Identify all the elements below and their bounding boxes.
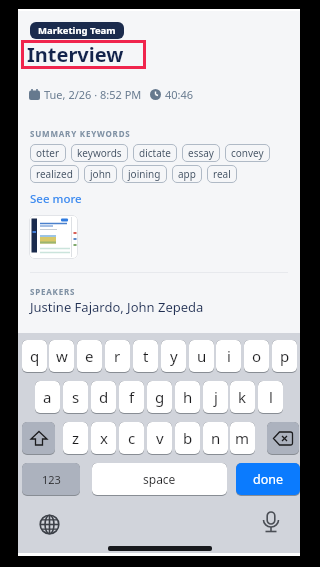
staticText: See more — [30, 191, 82, 207]
staticText: john — [90, 167, 111, 181]
staticText: c — [128, 428, 136, 448]
staticText: realized — [36, 167, 73, 181]
staticText: real — [213, 167, 231, 181]
button[interactable]: a — [35, 381, 60, 414]
staticText: b — [183, 428, 193, 448]
button[interactable]: b — [175, 422, 200, 455]
button[interactable] — [22, 422, 55, 455]
button[interactable]: t — [133, 340, 158, 373]
staticText: e — [85, 346, 94, 366]
button[interactable]: u — [189, 340, 214, 373]
staticText: o — [252, 346, 262, 366]
staticText: a — [43, 387, 52, 407]
button[interactable]: space — [92, 463, 227, 496]
button[interactable]: x — [91, 422, 116, 455]
button[interactable]: otter — [36, 146, 60, 160]
button[interactable]: m — [230, 422, 255, 455]
button[interactable] — [267, 422, 299, 455]
button[interactable]: essay — [188, 146, 214, 160]
staticText: Interview — [27, 41, 124, 68]
staticText: essay — [188, 146, 214, 160]
staticText: keywords — [77, 146, 122, 160]
staticText: space — [143, 471, 176, 487]
button[interactable]: dictate — [139, 146, 171, 160]
staticText: Marketing Team — [38, 24, 116, 37]
staticText: w — [56, 346, 68, 366]
staticText: k — [238, 387, 247, 407]
staticText: u — [197, 346, 207, 366]
staticText: 123 — [42, 472, 61, 487]
button[interactable]: s — [63, 381, 88, 414]
staticText: l — [269, 387, 273, 407]
button[interactable]: d — [91, 381, 116, 414]
button[interactable]: v — [147, 422, 172, 455]
staticText: otter — [36, 146, 60, 160]
button[interactable]: z — [63, 422, 88, 455]
button[interactable]: done — [236, 463, 300, 496]
staticText: done — [253, 471, 284, 488]
staticText: n — [211, 428, 221, 448]
button[interactable]: l — [258, 381, 283, 414]
button[interactable]: realized — [36, 167, 73, 181]
staticText: q — [30, 346, 40, 366]
staticText: SUMMARY KEYWORDS — [30, 128, 131, 139]
button[interactable] — [39, 514, 60, 535]
button[interactable] — [29, 215, 78, 259]
staticText: i — [227, 346, 231, 366]
button[interactable]: See more — [30, 191, 82, 207]
staticText: g — [155, 387, 165, 407]
staticText: joining — [128, 167, 161, 181]
button[interactable]: r — [105, 340, 130, 373]
staticText: s — [72, 387, 80, 407]
staticText: h — [183, 387, 193, 407]
button[interactable]: f — [119, 381, 144, 414]
staticText: t — [143, 346, 149, 366]
button[interactable]: k — [230, 381, 255, 414]
staticText: y — [170, 346, 178, 366]
staticText: 40:46 — [165, 87, 194, 102]
button[interactable]: e — [77, 340, 102, 373]
button[interactable]: i — [216, 340, 241, 373]
button[interactable] — [262, 511, 280, 535]
staticText: dictate — [139, 146, 171, 160]
staticText: x — [100, 428, 108, 448]
button[interactable]: real — [213, 167, 231, 181]
staticText: Justine Fajardo, John Zepeda — [30, 298, 204, 316]
button[interactable]: keywords — [77, 146, 122, 160]
staticText: SPEAKERS — [30, 286, 76, 297]
staticText: convey — [231, 146, 264, 160]
button[interactable]: john — [90, 167, 111, 181]
button[interactable]: g — [147, 381, 172, 414]
button[interactable]: 123 — [22, 463, 80, 496]
staticText: Tue, 2/26 · 8:52 PM — [44, 87, 142, 102]
button[interactable]: convey — [231, 146, 264, 160]
button[interactable]: Marketing Team — [38, 24, 116, 37]
staticText: v — [156, 428, 164, 448]
button[interactable]: w — [49, 340, 74, 373]
button[interactable]: Interview — [21, 40, 146, 69]
staticText: app — [178, 167, 196, 181]
button[interactable]: app — [178, 167, 196, 181]
button[interactable]: j — [203, 381, 228, 414]
button[interactable]: q — [22, 340, 47, 373]
staticText: j — [214, 387, 218, 407]
staticText: f — [129, 387, 135, 407]
staticText: r — [114, 346, 121, 366]
staticText: p — [280, 346, 290, 366]
button[interactable]: c — [119, 422, 144, 455]
button[interactable]: p — [272, 340, 297, 373]
staticText: z — [72, 428, 80, 448]
button[interactable]: y — [161, 340, 186, 373]
button[interactable]: joining — [128, 167, 161, 181]
staticText: m — [235, 428, 250, 448]
staticText: d — [99, 387, 109, 407]
button[interactable]: h — [175, 381, 200, 414]
button[interactable]: n — [203, 422, 228, 455]
button[interactable]: o — [244, 340, 269, 373]
